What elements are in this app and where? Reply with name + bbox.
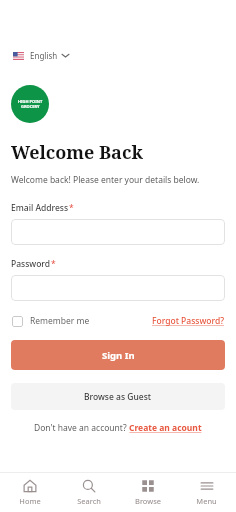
other: Menu — [200, 479, 214, 493]
button[interactable]: Create an acount — [129, 422, 202, 434]
button[interactable]: Menu — [177, 475, 236, 510]
staticText: Password — [11, 258, 51, 270]
staticText: * — [69, 202, 74, 214]
button[interactable]: Forgot Password? — [151, 313, 225, 329]
staticText: Email Address — [11, 202, 69, 214]
staticText: * — [51, 258, 56, 270]
staticText: English — [30, 50, 58, 61]
button[interactable]: Sign In — [11, 340, 225, 370]
staticText: Browse as Guest — [84, 391, 152, 403]
staticText: Create an acount — [129, 422, 202, 434]
staticText: Forgot Password? — [152, 315, 224, 327]
staticText: Home — [19, 496, 41, 506]
staticText: Don't have an account? — [34, 422, 129, 434]
button[interactable]: English — [11, 48, 71, 63]
button[interactable]: Search — [59, 475, 118, 510]
staticText: Sign In — [102, 349, 135, 362]
staticText: GROCERY — [21, 104, 40, 109]
button[interactable]: Remember me — [11, 313, 91, 329]
button[interactable]: Home — [0, 475, 59, 510]
button[interactable] — [11, 275, 225, 301]
staticText: Search — [77, 496, 101, 506]
staticText: Welcome Back — [11, 140, 143, 165]
button[interactable] — [11, 219, 225, 245]
button[interactable]: Browse — [118, 475, 177, 510]
other: Search — [82, 479, 96, 493]
staticText: Welcome back! Please enter your details … — [11, 174, 200, 186]
other: Home — [23, 479, 37, 493]
staticText: Browse — [135, 496, 161, 506]
staticText: Menu — [196, 496, 217, 506]
staticText: Remember me — [30, 315, 90, 327]
staticText: HIGH POINT — [18, 99, 43, 104]
other: Browse — [141, 479, 155, 493]
button[interactable]: Browse as Guest — [11, 383, 225, 410]
